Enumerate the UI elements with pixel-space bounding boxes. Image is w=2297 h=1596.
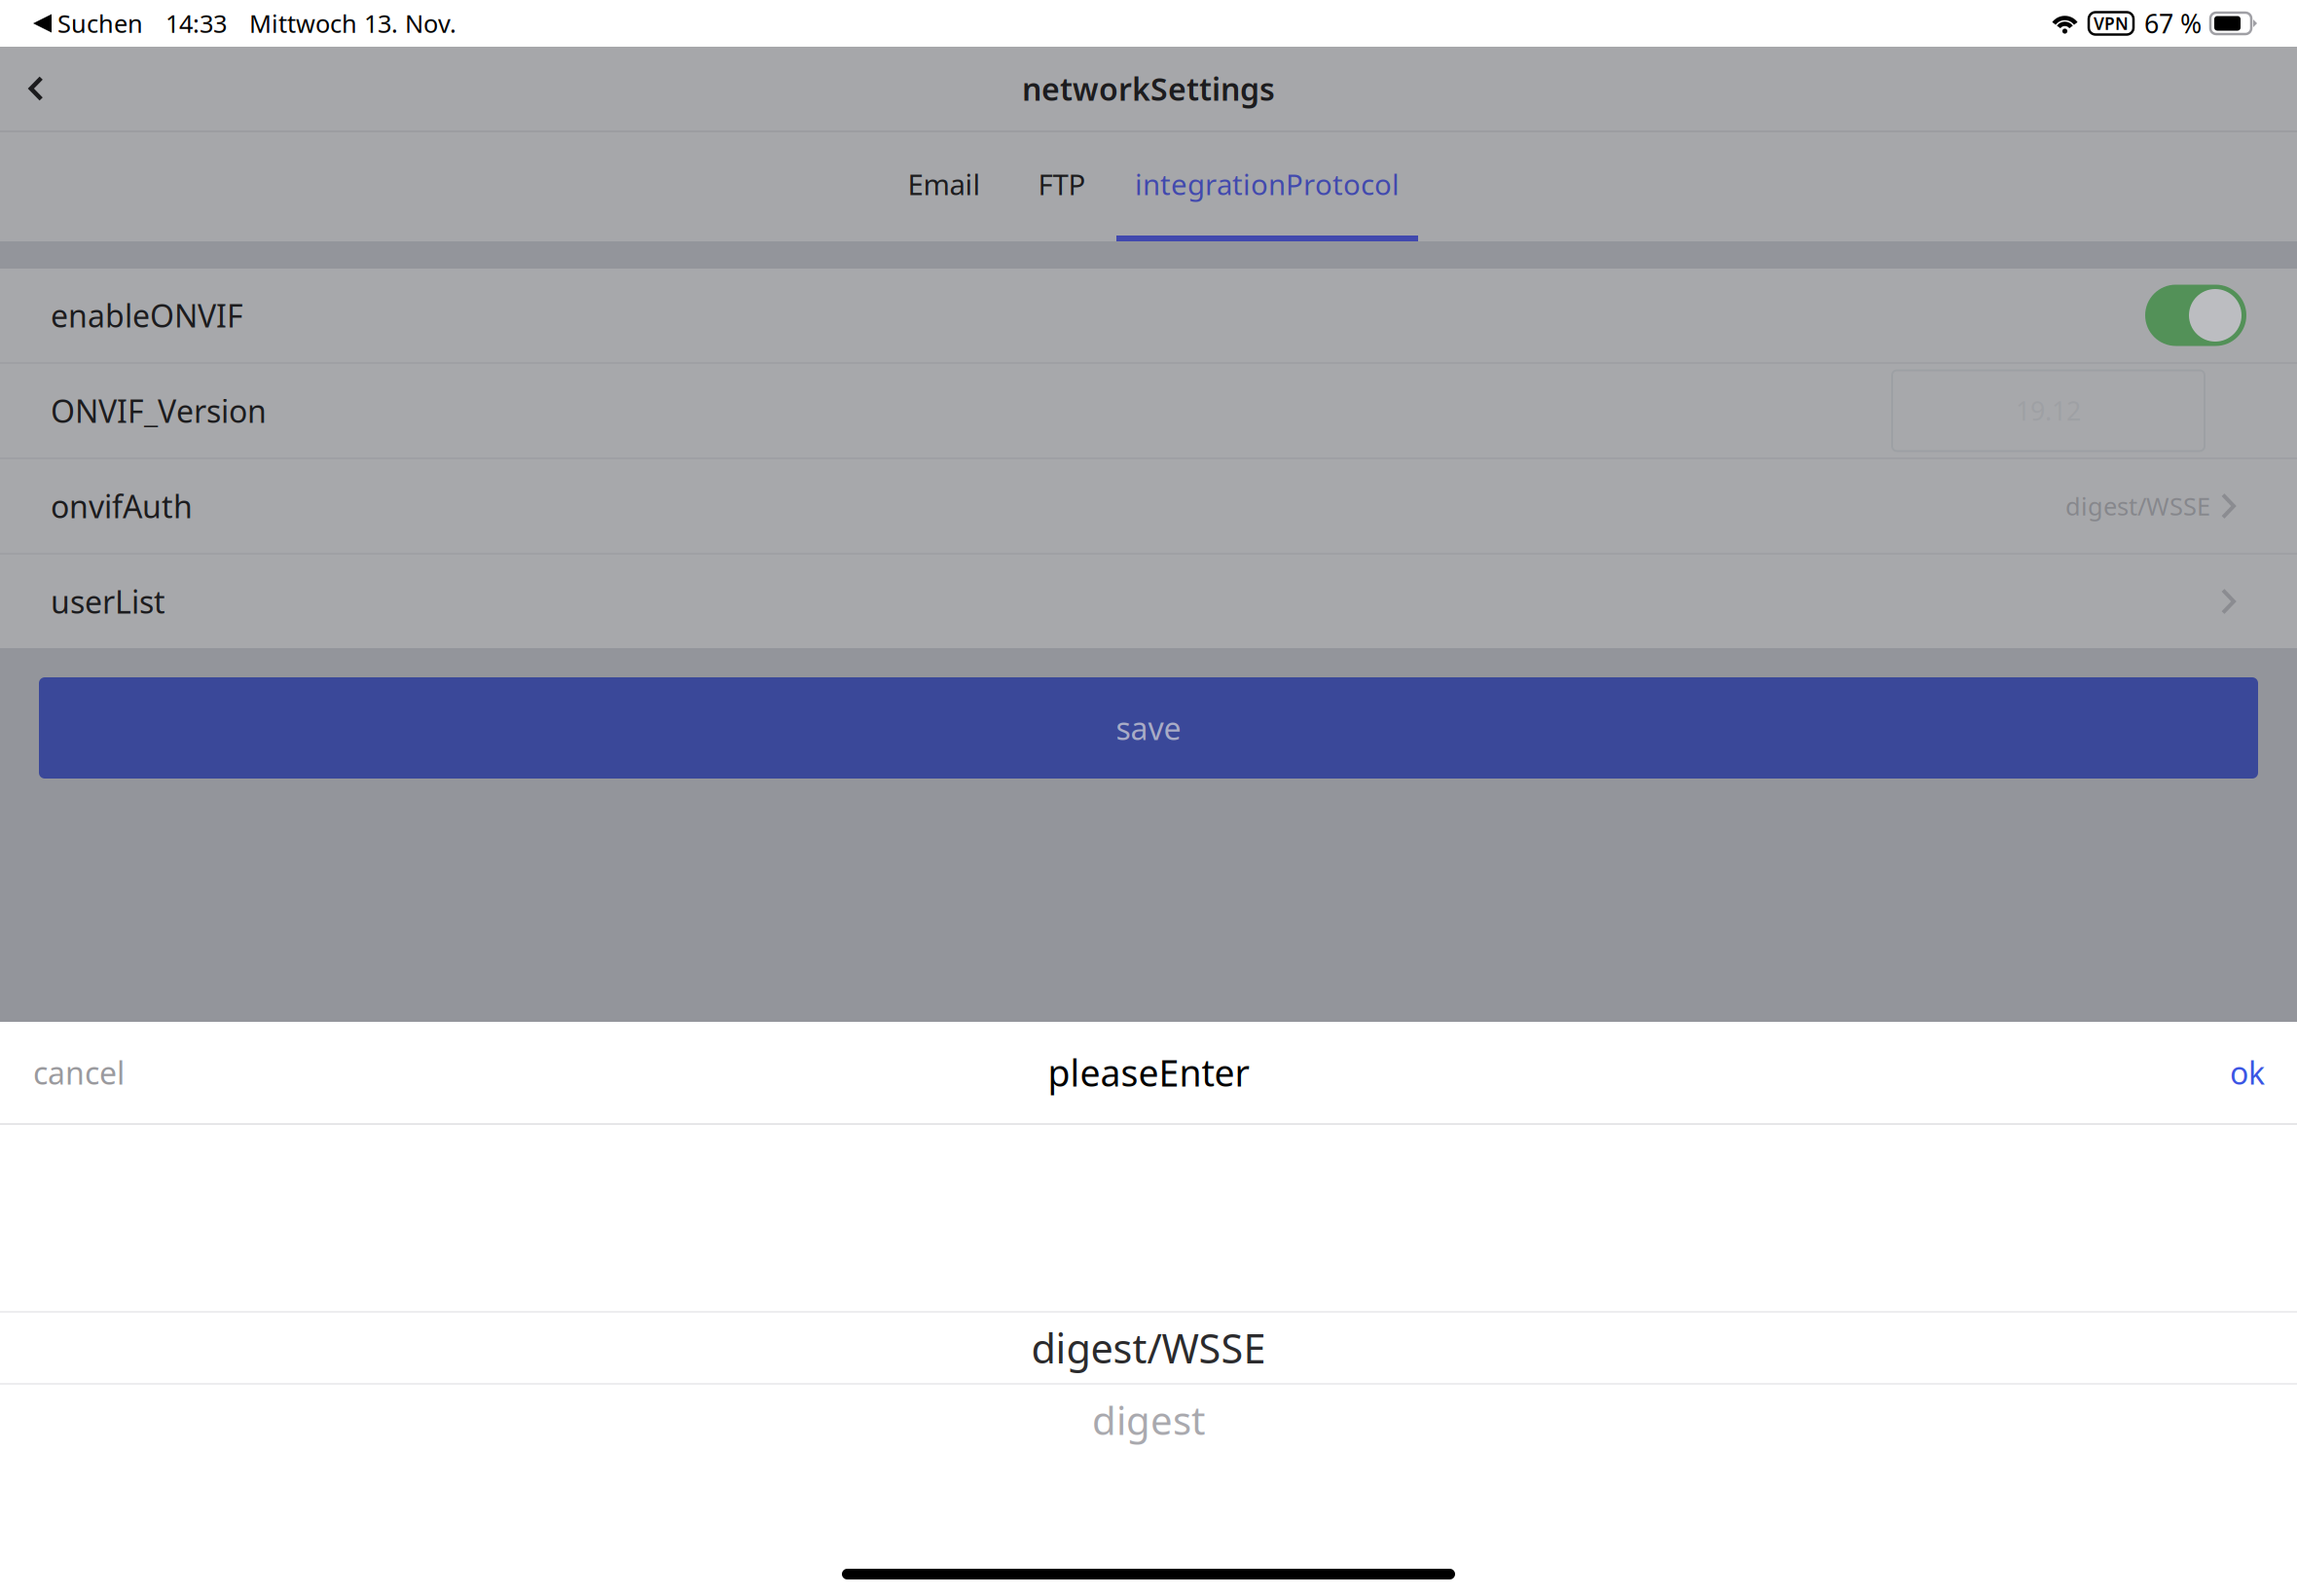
staticText: onvifAuth bbox=[51, 485, 193, 527]
staticText: digest/WSSE bbox=[1031, 1321, 1266, 1375]
staticText: pleaseEnter bbox=[1048, 1048, 1249, 1097]
button[interactable]: cancel bbox=[0, 1022, 158, 1123]
staticText: 67 % bbox=[2144, 6, 2202, 41]
staticText: ONVIF_Version bbox=[51, 390, 267, 431]
staticText: userList bbox=[51, 581, 165, 622]
staticText: enableONVIF bbox=[51, 295, 243, 336]
button[interactable]: Back bbox=[0, 47, 72, 130]
button[interactable]: Enable ONVIF bbox=[2145, 285, 2246, 346]
staticText: cancel bbox=[33, 1052, 125, 1093]
staticText: save bbox=[1116, 707, 1181, 749]
button[interactable]: FTP bbox=[1007, 132, 1116, 241]
staticText: FTP bbox=[1038, 165, 1086, 203]
button[interactable]: Email bbox=[881, 132, 1007, 241]
staticText: Mittwoch 13. Nov. bbox=[249, 7, 456, 40]
button[interactable]: save bbox=[39, 677, 2258, 779]
staticText: integrationProtocol bbox=[1135, 165, 1400, 203]
staticText: digest/WSSE bbox=[2065, 490, 2210, 522]
button[interactable]: digest bbox=[0, 1385, 2297, 1455]
staticText: digest bbox=[1092, 1394, 1205, 1446]
staticText: Suchen bbox=[57, 7, 143, 40]
button[interactable]: integrationProtocol bbox=[1116, 132, 1418, 241]
staticText: Email bbox=[908, 165, 981, 203]
button[interactable]: digest/WSSE bbox=[0, 1313, 2297, 1383]
button[interactable]: ok bbox=[2198, 1022, 2297, 1123]
staticText: ok bbox=[2230, 1052, 2265, 1093]
staticText: VPN bbox=[2094, 12, 2129, 35]
button[interactable]: userList bbox=[0, 555, 2297, 648]
staticText: networkSettings bbox=[1022, 68, 1275, 109]
button[interactable]: onvifAuth bbox=[0, 459, 2297, 553]
staticText: 14:33 bbox=[165, 7, 227, 40]
